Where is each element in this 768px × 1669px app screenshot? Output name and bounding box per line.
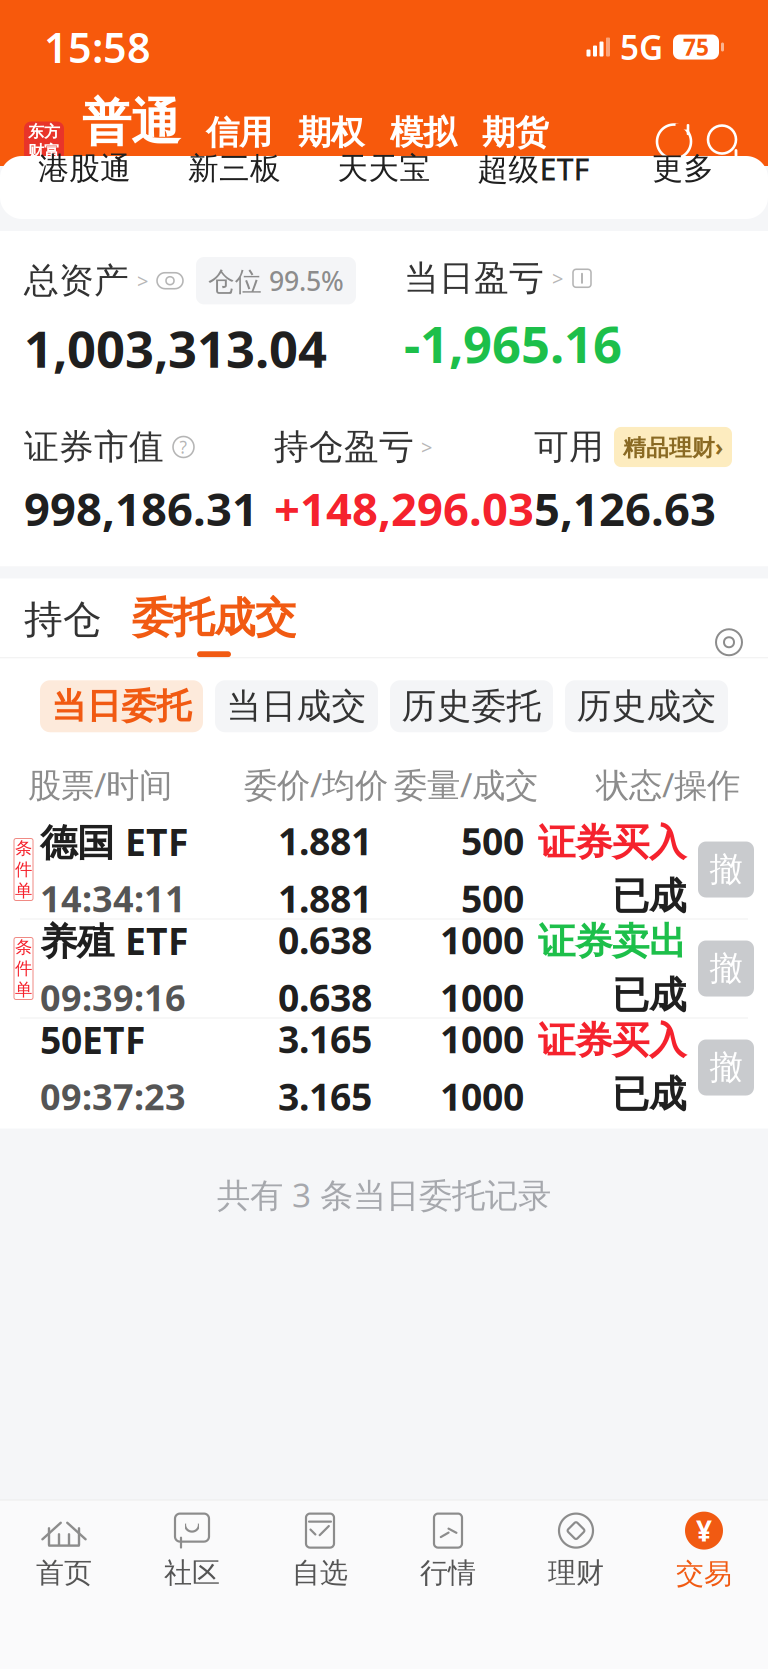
button[interactable]: 理财 xyxy=(512,1502,640,1606)
staticText: ¥ xyxy=(696,1512,712,1549)
staticText: 股票/时间 xyxy=(28,762,172,806)
button[interactable]: 撤 xyxy=(698,841,754,897)
button[interactable]: 信用 xyxy=(206,112,272,158)
button[interactable]: 持仓 xyxy=(24,596,102,657)
button[interactable]: 当日成交 xyxy=(215,680,378,732)
staticText: 09:39:16 xyxy=(40,973,186,1021)
button[interactable]: 当日盈亏 xyxy=(404,257,593,300)
staticText: ? xyxy=(179,435,187,458)
staticText: 模拟 xyxy=(390,112,456,153)
staticText: 天天宝 xyxy=(337,150,430,187)
staticText: 期权 xyxy=(298,112,364,153)
staticText: 单 xyxy=(15,880,32,901)
staticText: 理财 xyxy=(548,1556,604,1590)
button[interactable]: 当日委托 xyxy=(40,680,203,732)
staticText: 财富 xyxy=(28,141,60,161)
button[interactable]: 港股通 xyxy=(10,150,160,187)
button[interactable]: 新三板 xyxy=(160,150,309,187)
staticText: 信用 xyxy=(206,112,272,153)
staticText: 证券卖出 xyxy=(538,919,686,965)
staticText: 行情 xyxy=(420,1556,476,1590)
staticText: 75 xyxy=(683,32,709,62)
button[interactable]: 条 xyxy=(0,820,768,918)
staticText: 件 xyxy=(15,958,32,979)
button[interactable]: 撤 xyxy=(698,1039,754,1095)
staticText: 1000 xyxy=(440,1071,524,1121)
staticText: 总资产 xyxy=(24,259,129,302)
button[interactable]: 撤 xyxy=(698,940,754,996)
staticText: 已成 xyxy=(612,972,686,1018)
staticText: 交易 xyxy=(676,1557,732,1591)
staticText: 条 xyxy=(15,838,32,859)
staticText: 更多 xyxy=(652,150,714,187)
button[interactable]: 天天宝 xyxy=(309,150,459,187)
staticText: 09:37:23 xyxy=(40,1072,186,1120)
staticText: 14:34:11 xyxy=(40,874,186,922)
button[interactable]: 持仓盈亏 xyxy=(274,426,432,468)
staticText: 单 xyxy=(15,979,32,1000)
staticText: 已成 xyxy=(612,873,686,919)
button[interactable]: 期权 xyxy=(298,112,364,158)
button[interactable]: 条 xyxy=(0,919,768,1017)
staticText: 历史委托 xyxy=(401,685,541,728)
staticText: 新三板 xyxy=(188,150,281,187)
button[interactable]: 历史成交 xyxy=(565,680,728,732)
staticText: 15:58 xyxy=(44,20,151,74)
staticText: 条 xyxy=(15,937,32,958)
staticText: 精品理财› xyxy=(623,432,723,462)
staticText: 998,186.31 xyxy=(24,478,258,538)
button[interactable]: 普通 xyxy=(82,92,180,159)
button[interactable]: 首页 xyxy=(0,1502,128,1606)
button[interactable]: 50ETF xyxy=(0,1018,768,1116)
staticText: 共有 3 条当日委托记录 xyxy=(217,1172,551,1217)
staticText: 500 xyxy=(461,873,524,923)
staticText: 证券买入 xyxy=(538,1018,686,1064)
staticText: 当日成交 xyxy=(226,685,366,728)
button[interactable]: ¥ xyxy=(640,1501,768,1607)
button[interactable]: 搜索 xyxy=(704,121,744,161)
button[interactable]: 社区 xyxy=(128,1502,256,1606)
staticText: 持仓盈亏 xyxy=(274,426,414,468)
staticText: 500 xyxy=(461,816,524,865)
staticText: 0.638 xyxy=(278,972,372,1022)
button[interactable]: 委托成交 xyxy=(132,592,296,657)
button[interactable]: 自选 xyxy=(256,1502,384,1606)
staticText: 1.881 xyxy=(278,873,372,923)
button[interactable]: 更多 xyxy=(608,150,758,187)
staticText: > xyxy=(137,267,148,294)
button[interactable]: 期货 xyxy=(482,112,548,158)
staticText: 历史成交 xyxy=(576,685,716,728)
button[interactable]: 东方财富 xyxy=(24,121,64,161)
button[interactable]: 历史委托 xyxy=(390,680,553,732)
staticText: 东方 xyxy=(28,122,60,142)
staticText: 1,003,313.04 xyxy=(24,314,327,382)
staticText: 养殖 ETF xyxy=(40,916,188,965)
button[interactable]: 设置 xyxy=(714,627,744,657)
staticText: 件 xyxy=(15,859,32,880)
staticText: 50ETF xyxy=(40,1015,145,1064)
staticText: 证券市值 xyxy=(24,426,164,468)
staticText: 当日盈亏 xyxy=(404,257,544,300)
staticText: 1000 xyxy=(440,915,524,964)
staticText: 普通 xyxy=(82,92,180,153)
button[interactable]: 行情 xyxy=(384,1502,512,1606)
staticText: 3.165 xyxy=(278,1071,372,1121)
staticText: 超级ETF xyxy=(478,148,590,189)
button[interactable]: 精品理财› xyxy=(614,427,732,467)
staticText: 证券买入 xyxy=(538,820,686,866)
staticText: 仓位 99.5% xyxy=(208,263,344,298)
staticText: 委价/均价 xyxy=(244,762,388,806)
staticText: 撤 xyxy=(709,948,742,989)
button[interactable]: 总资产 xyxy=(24,257,356,304)
staticText: > xyxy=(552,265,563,292)
staticText: 5,126.63 xyxy=(534,478,716,538)
button[interactable]: 超级ETF xyxy=(459,148,608,189)
staticText: 期货 xyxy=(482,112,548,153)
staticText: 自选 xyxy=(292,1556,348,1590)
staticText: 可用 xyxy=(534,426,604,468)
button[interactable]: 模拟 xyxy=(390,112,456,158)
staticText: 1.881 xyxy=(278,816,372,865)
staticText: 1000 xyxy=(440,972,524,1022)
button[interactable]: 刷新 xyxy=(654,121,694,161)
staticText: 委量/成交 xyxy=(394,762,538,806)
